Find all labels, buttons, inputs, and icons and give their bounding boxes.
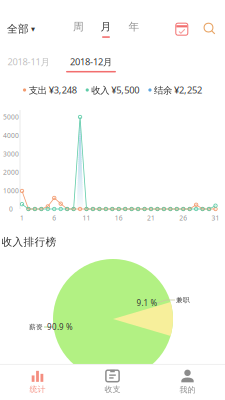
staticText: 兼职	[176, 296, 190, 304]
button[interactable]: 全部	[1, 14, 41, 43]
button[interactable]: 2018-11月	[0, 52, 58, 76]
button[interactable]: 周	[68, 16, 89, 42]
staticText: 1	[20, 214, 24, 222]
staticText: 薪资	[29, 323, 43, 331]
button[interactable]: 年	[123, 16, 144, 42]
staticText: ▾	[31, 24, 35, 34]
staticText: 9.1 %	[136, 298, 157, 308]
staticText: 21	[147, 214, 155, 222]
staticText: 90.9 %	[47, 322, 73, 332]
button[interactable]: Calendar	[173, 20, 191, 38]
staticText: 26	[179, 214, 187, 222]
staticText: 收入排行榜	[1, 235, 56, 248]
staticText: 5000	[3, 113, 19, 121]
staticText: 11	[82, 214, 90, 222]
staticText: 6	[52, 214, 56, 222]
button[interactable]: 月	[95, 16, 116, 42]
staticText: 2018-12月	[70, 56, 112, 68]
staticText: 我的	[179, 385, 195, 395]
staticText: 周	[73, 20, 84, 33]
staticText: 结余 ¥2,252	[154, 84, 202, 96]
staticText: 3000	[3, 149, 19, 158]
staticText: 16	[115, 214, 123, 222]
staticText: 2018-11月	[7, 56, 49, 68]
button[interactable]: 收支	[77, 365, 147, 399]
button[interactable]: 统计	[2, 365, 72, 399]
staticText: 0	[9, 205, 13, 213]
button[interactable]: 我的	[152, 365, 222, 399]
staticText: 1000	[3, 186, 19, 195]
staticText: 31	[211, 214, 219, 222]
staticText: 全部	[7, 22, 29, 35]
staticText: 收支	[104, 384, 120, 394]
button[interactable]: Search	[201, 20, 219, 38]
button[interactable]: 2018-12月	[61, 52, 121, 76]
staticText: 年	[128, 20, 139, 33]
staticText: 2000	[3, 168, 19, 177]
staticText: 统计	[29, 384, 45, 394]
staticText: 收入 ¥5,500	[91, 84, 139, 96]
staticText: 月	[100, 20, 111, 33]
staticText: 支出 ¥3,248	[29, 84, 77, 96]
staticText: 4000	[3, 131, 19, 140]
